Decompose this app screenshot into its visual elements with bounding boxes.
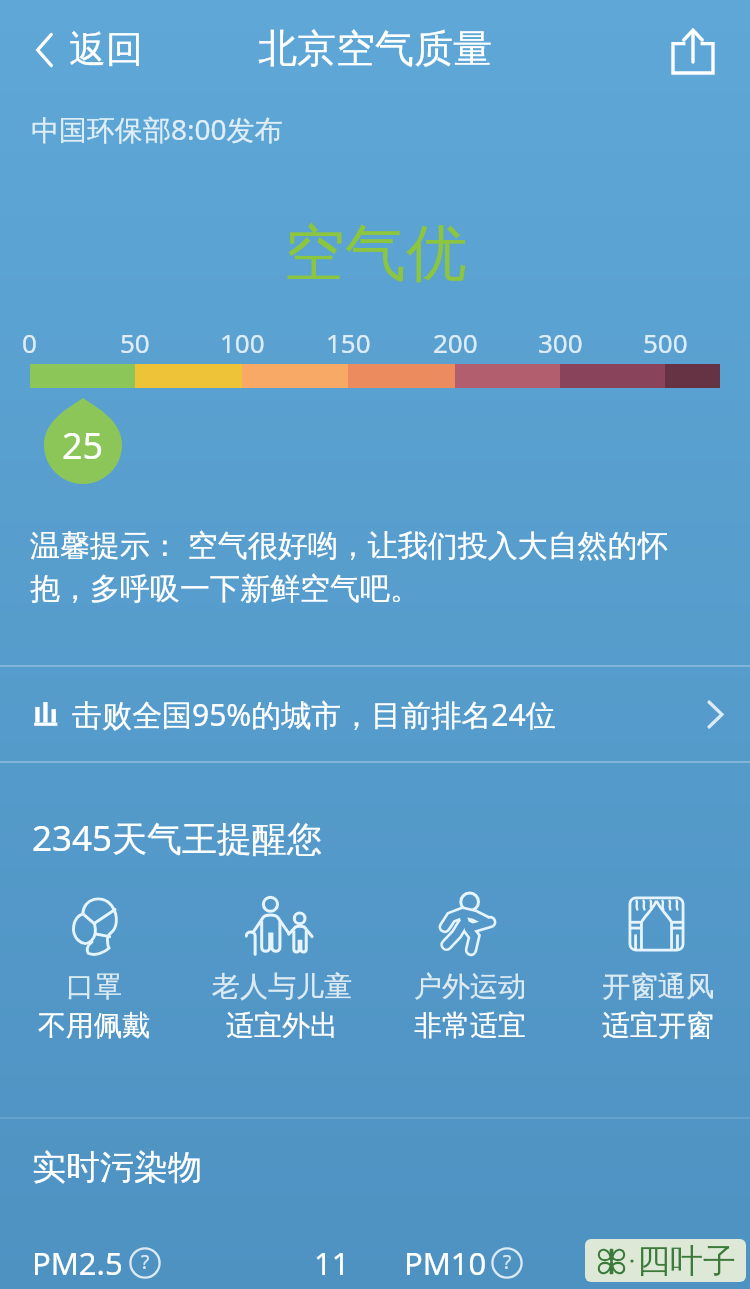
staticText: 中国环保部8:00发布 — [31, 110, 283, 148]
staticText: 北京空气质量 — [258, 24, 492, 73]
staticText: 空气优 — [284, 215, 467, 292]
staticText: PM2.5 — [32, 1242, 123, 1284]
staticText: 0 — [22, 325, 37, 360]
staticText: 150 — [326, 325, 371, 360]
button[interactable]: 户外运动 — [376, 886, 564, 1046]
button[interactable]: 老人与儿童 — [188, 886, 376, 1046]
staticText: 老人与儿童 — [212, 969, 352, 1003]
button[interactable]: 开窗通风 — [564, 886, 750, 1046]
staticText: 500 — [643, 325, 688, 360]
staticText: 不用佩戴 — [38, 1008, 150, 1042]
staticText: 开窗通风 — [602, 969, 714, 1003]
staticText: 户外运动 — [414, 969, 526, 1003]
staticText: 温馨提示： 空气很好哟，让我们投入大自然的怀抱，多呼吸一下新鲜空气吧。 — [30, 524, 718, 608]
staticText: 25 — [62, 421, 104, 470]
staticText: 口罩 — [66, 969, 122, 1003]
staticText: 返回 — [69, 26, 143, 73]
staticText: 200 — [433, 325, 478, 360]
staticText: 实时污染物 — [32, 1146, 202, 1189]
staticText: ? — [141, 1249, 150, 1275]
button[interactable]: 击败全国95%的城市，目前排名24位 — [0, 667, 750, 762]
staticText: 击败全国95%的城市，目前排名24位 — [72, 694, 556, 735]
staticText: 适宜开窗 — [602, 1008, 714, 1042]
staticText: 2345天气王提醒您 — [32, 814, 323, 862]
staticText: 适宜外出 — [226, 1008, 338, 1042]
staticText: PM10 — [404, 1242, 487, 1284]
staticText: 300 — [538, 325, 583, 360]
staticText: 四叶子 — [637, 1240, 736, 1282]
staticText: 50 — [120, 325, 150, 360]
button[interactable]: 返回 — [24, 16, 159, 83]
staticText: 100 — [220, 325, 265, 360]
button[interactable]: 口罩 — [0, 886, 188, 1046]
staticText: 11 — [314, 1242, 350, 1284]
staticText: 非常适宜 — [414, 1008, 526, 1042]
staticText: ? — [503, 1249, 512, 1275]
button[interactable]: 分享 Share — [660, 16, 726, 86]
